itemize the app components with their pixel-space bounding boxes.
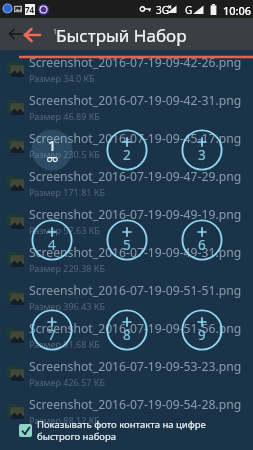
button[interactable]: Speed dial 7 (30, 308, 74, 352)
staticText: 8 (123, 326, 131, 344)
staticText: Screenshot_2016-07-19-09-51-51.png (29, 282, 242, 299)
staticText: 3G (156, 3, 169, 17)
staticText: 9 (198, 326, 206, 344)
button[interactable]: Speed dial 1 (30, 128, 74, 172)
button[interactable]: Screenshot_2016-07-19-09-47-29.png (0, 164, 253, 202)
staticText: 7 (48, 326, 56, 344)
button[interactable]: Screenshot_2016-07-19-09-51-51.png (0, 278, 253, 316)
button[interactable]: Speed dial 3 (180, 128, 224, 172)
staticText: Screenshot_2016-07-19-09-42-26.png (29, 54, 242, 71)
staticText: Screenshot_2016-07-19-09-49-19.png (29, 206, 242, 223)
button[interactable]: Screenshot_2016-07-19-09-53-23.png (0, 354, 253, 392)
staticText: 6 (198, 236, 206, 254)
staticText: Screenshot_2016-07-19-09-54-28.png (29, 396, 242, 413)
button[interactable]: Speed dial 4 (30, 218, 74, 262)
staticText: Screenshot_2016-07-19-09-47-29.png (29, 168, 242, 185)
staticText: Screenshot_2016-07-19-09-51-56.png (29, 320, 242, 337)
staticText: Размер 88.12 КБ (29, 414, 100, 426)
button[interactable]: Screenshot_2016-07-19-09-54-28.png (0, 392, 253, 430)
button[interactable]: Screenshot_2016-07-19-09-42-26.png (0, 50, 253, 88)
button[interactable]: Speed dial 9 (180, 308, 224, 352)
staticText: Размер 91.68 КБ (29, 338, 100, 350)
staticText: Screenshot_2016-07-19-09-45-17.png (29, 130, 242, 147)
staticText: 3 (198, 146, 206, 164)
staticText: Размер 46.89 КБ (29, 110, 100, 122)
staticText: 2 (123, 146, 131, 164)
staticText: 74 (25, 4, 35, 15)
staticText: 5 (123, 236, 131, 254)
staticText: Размер 426.57 КБ (29, 376, 105, 388)
button[interactable]: Screenshot_2016-07-19-09-45-17.png (0, 126, 253, 164)
staticText: Размер 230.5 КБ (29, 148, 100, 160)
button[interactable]: Screenshot_2016-07-19-09-42-31.png (0, 88, 253, 126)
button[interactable]: Speed dial 8 (105, 308, 149, 352)
button[interactable]: Screenshot_2016-07-19-09-49-31.png (0, 240, 253, 278)
staticText: Screenshot_2016-07-19-09-53-23.png (29, 358, 242, 375)
button[interactable]: Speed dial 2 (105, 128, 149, 172)
staticText: Быстрый Набор (56, 24, 187, 47)
staticText: G (185, 3, 193, 17)
staticText: Размер 57.63 КБ (29, 224, 100, 236)
staticText: Размер 171.81 КБ (29, 186, 105, 198)
button[interactable]: Показывать фото контакта на цифре быстро… (0, 410, 253, 450)
staticText: Размер 229.38 КБ (29, 262, 105, 274)
staticText: Показывать фото контакта на цифре быстро… (37, 418, 206, 443)
button[interactable]: Back (2, 18, 30, 50)
staticText: Размер 34.0 КБ (29, 72, 95, 84)
button[interactable]: Screenshot_2016-07-19-09-49-19.png (0, 202, 253, 240)
staticText: Размер 396.43 КБ (29, 300, 105, 312)
staticText: 4 (48, 236, 56, 254)
staticText: 1 (48, 136, 57, 155)
staticText: Screenshot_2016-07-19-09-42-31.png (29, 92, 242, 109)
button[interactable]: Screenshot_2016-07-19-09-51-56.png (0, 316, 253, 354)
button[interactable]: Speed dial 6 (180, 218, 224, 262)
staticText: 10:06 (223, 3, 252, 18)
staticText: Screenshot_2016-07-19-09-49-31.png (29, 244, 242, 261)
button[interactable]: Speed dial 5 (105, 218, 149, 262)
staticText: 1 (53, 27, 58, 37)
